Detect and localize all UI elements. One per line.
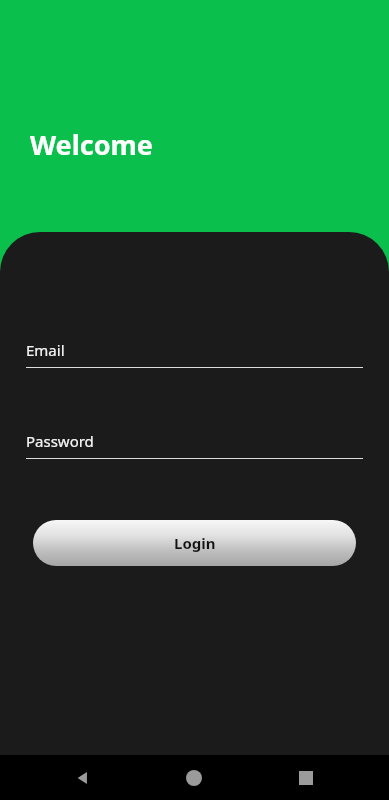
staticText: Password [26, 431, 94, 451]
button[interactable]: Home [171, 755, 217, 800]
staticText: Email [26, 340, 65, 360]
button[interactable]: Recent apps [283, 755, 329, 800]
staticText: Login [174, 533, 216, 553]
staticText: Welcome [30, 126, 153, 163]
button[interactable]: Password [26, 431, 363, 459]
button[interactable]: Back [60, 755, 106, 800]
button[interactable]: Login [33, 520, 356, 566]
button[interactable]: Email [26, 340, 363, 368]
